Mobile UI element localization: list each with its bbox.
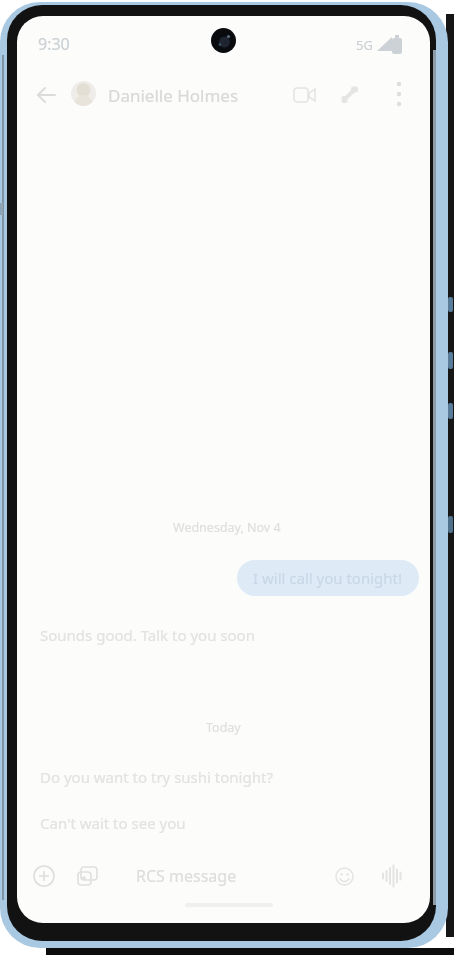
staticText: Can't wait to see you bbox=[40, 813, 186, 833]
staticText: RCS message bbox=[136, 865, 237, 887]
staticText: Danielle Holmes bbox=[108, 84, 239, 107]
button[interactable] bbox=[30, 862, 58, 890]
staticText: 9:30 bbox=[38, 33, 70, 55]
button[interactable] bbox=[334, 79, 366, 111]
button[interactable] bbox=[30, 79, 62, 111]
staticText: Wednesday, Nov 4 bbox=[173, 519, 281, 536]
staticText: I will call you tonight! bbox=[253, 568, 403, 588]
button[interactable] bbox=[74, 862, 102, 890]
button[interactable] bbox=[71, 81, 96, 106]
staticText: Sounds good. Talk to you soon bbox=[40, 625, 255, 645]
button[interactable] bbox=[378, 862, 406, 890]
button[interactable] bbox=[385, 76, 413, 112]
button[interactable]: I will call you tonight! bbox=[237, 560, 419, 596]
button[interactable] bbox=[330, 862, 358, 890]
staticText: Do you want to try sushi tonight? bbox=[40, 767, 273, 787]
button[interactable]: RCS message bbox=[129, 862, 309, 890]
button[interactable] bbox=[289, 79, 321, 111]
staticText: 5G bbox=[356, 36, 373, 54]
staticText: Today bbox=[206, 719, 241, 736]
